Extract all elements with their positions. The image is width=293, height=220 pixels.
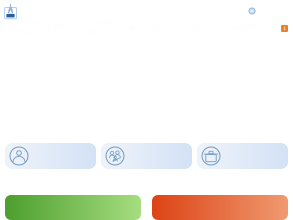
- button[interactable]: Home: [2, 2, 18, 20]
- button[interactable]: Menu: [281, 25, 288, 32]
- button[interactable]: Personal: [5, 143, 96, 169]
- button[interactable]: Family: [101, 143, 192, 169]
- button[interactable]: Green promotion: [5, 195, 141, 220]
- button[interactable]: Account: [247, 6, 257, 16]
- button[interactable]: Orange promotion: [152, 195, 288, 220]
- button[interactable]: Business: [197, 143, 288, 169]
